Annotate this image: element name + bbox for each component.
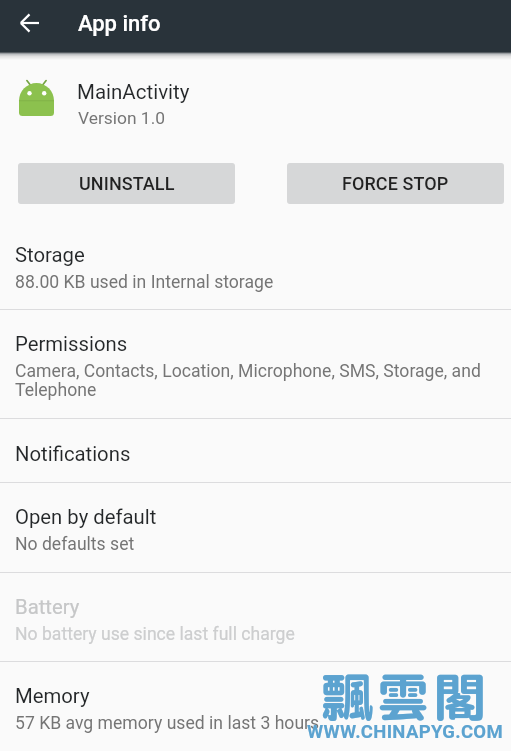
staticText: WWW.CHINAPYG.COM bbox=[307, 722, 503, 742]
button[interactable]: Storage bbox=[0, 221, 511, 310]
staticText: Storage bbox=[15, 245, 85, 267]
staticText: No battery use since last full charge bbox=[15, 625, 295, 644]
staticText: Notifications bbox=[15, 444, 131, 466]
button[interactable]: UNINSTALL bbox=[18, 163, 235, 204]
staticText: MainActivity bbox=[77, 82, 190, 104]
staticText: Permissions bbox=[15, 334, 128, 356]
staticText: FORCE STOP bbox=[342, 173, 449, 194]
staticText: Camera, Contacts, Location, Microphone, … bbox=[15, 362, 495, 400]
staticText: Memory bbox=[15, 686, 90, 708]
staticText: 飄雲閣 bbox=[320, 660, 492, 733]
button[interactable]: Memory bbox=[0, 662, 511, 751]
button[interactable]: Navigate up bbox=[7, 0, 52, 45]
staticText: Open by default bbox=[15, 507, 157, 529]
button[interactable]: Battery bbox=[0, 573, 511, 662]
staticText: Version 1.0 bbox=[78, 108, 165, 128]
button[interactable]: Notifications bbox=[0, 419, 511, 483]
staticText: UNINSTALL bbox=[79, 173, 175, 194]
staticText: 88.00 KB used in Internal storage bbox=[15, 273, 274, 292]
button[interactable]: Open by default bbox=[0, 483, 511, 573]
staticText: No defaults set bbox=[15, 535, 135, 554]
button[interactable]: FORCE STOP bbox=[287, 163, 504, 204]
staticText: App info bbox=[78, 11, 161, 36]
button[interactable]: Permissions bbox=[0, 310, 511, 419]
staticText: Battery bbox=[15, 597, 80, 619]
staticText: 57 KB avg memory used in last 3 hours bbox=[15, 714, 320, 733]
